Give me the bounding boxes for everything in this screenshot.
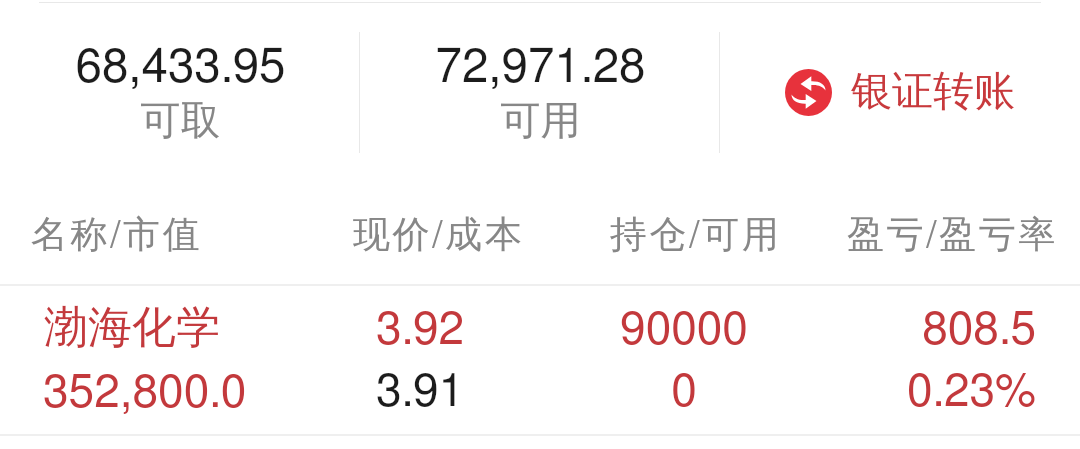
staticText: 可用 bbox=[361, 95, 720, 145]
button[interactable]: 银证转账 bbox=[720, 0, 1080, 170]
staticText: 3.91 bbox=[320, 369, 520, 415]
staticText: 0 bbox=[584, 369, 784, 415]
staticText: 渤海化学 bbox=[44, 300, 344, 355]
staticText: 盈亏/盈亏率 bbox=[847, 211, 1080, 258]
staticText: 808.5 bbox=[836, 307, 1036, 353]
button[interactable]: 72,971.28 bbox=[360, 0, 719, 170]
button[interactable]: 渤海化学 bbox=[0, 284, 1080, 434]
staticText: 68,433.95 bbox=[1, 44, 360, 92]
staticText: 0.23% bbox=[836, 369, 1036, 415]
other: 银证转账 bbox=[785, 69, 832, 116]
staticText: 3.92 bbox=[320, 307, 520, 353]
staticText: 72,971.28 bbox=[361, 44, 720, 92]
staticText: 现价/成本 bbox=[353, 211, 653, 258]
staticText: 持仓/可用 bbox=[610, 211, 910, 258]
staticText: 名称/市值 bbox=[31, 211, 331, 258]
staticText: 可取 bbox=[1, 95, 360, 145]
button[interactable]: 68,433.95 bbox=[0, 0, 359, 170]
staticText: 352,800.0 bbox=[43, 370, 343, 416]
staticText: 银证转账 bbox=[851, 66, 1051, 118]
staticText: 90000 bbox=[584, 307, 784, 353]
